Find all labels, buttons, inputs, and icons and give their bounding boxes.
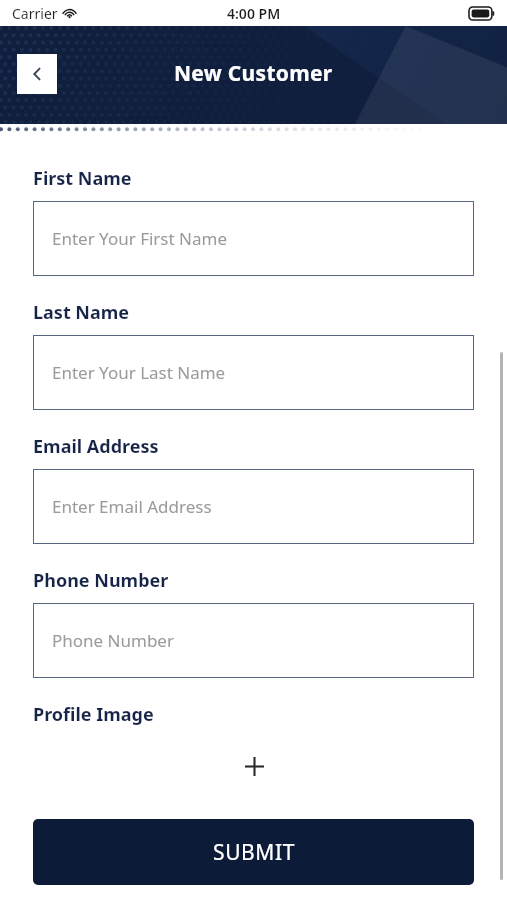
staticText: Last Name [33, 300, 130, 325]
button[interactable]: SUBMIT [33, 819, 474, 885]
staticText: Enter Your Last Name [52, 361, 226, 384]
staticText: Phone Number [33, 568, 169, 593]
button[interactable]: Add profile image [235, 747, 273, 785]
button[interactable]: Enter Email Address [33, 469, 474, 544]
staticText: New Customer [174, 59, 333, 88]
staticText: Email Address [33, 434, 159, 459]
button[interactable]: Enter Your First Name [33, 201, 474, 276]
staticText: Carrier [12, 4, 58, 23]
staticText: Enter Email Address [52, 495, 212, 518]
button[interactable]: Back [17, 54, 57, 94]
button[interactable]: Enter Your Last Name [33, 335, 474, 410]
staticText: First Name [33, 166, 132, 191]
staticText: Profile Image [33, 702, 154, 727]
staticText: Enter Your First Name [52, 227, 227, 250]
staticText: 4:00 PM [227, 4, 281, 23]
button[interactable]: Phone Number [33, 603, 474, 678]
staticText: SUBMIT [213, 838, 295, 867]
staticText: Phone Number [52, 629, 174, 652]
